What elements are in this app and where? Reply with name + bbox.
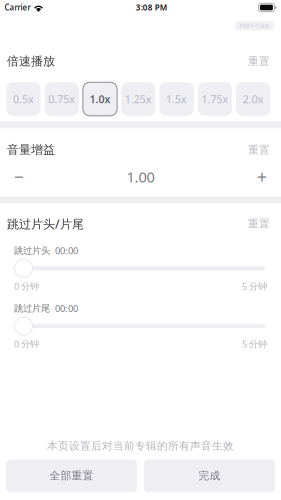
staticText: 1.25x [125, 92, 152, 106]
staticText: 完成 [198, 469, 220, 482]
button[interactable]: 1.75x [198, 82, 232, 116]
staticText: 3:08 PM [136, 2, 167, 13]
button[interactable]: 重置 [234, 53, 270, 70]
button[interactable]: 1.25x [121, 82, 155, 116]
staticText: 倍速播放 [7, 54, 55, 68]
staticText: 本页设置后对当前专辑的所有声音生效 [47, 439, 234, 452]
staticText: + [257, 165, 267, 188]
staticText: 5 分钟 [242, 338, 267, 350]
staticText: 00:00 [55, 244, 78, 257]
staticText: 音量增益 [7, 142, 55, 157]
button[interactable]: 完成 [144, 459, 275, 492]
staticText: 1.00 [126, 167, 154, 186]
staticText: 00:00 [55, 302, 78, 315]
button[interactable]: 1.5x [159, 82, 194, 116]
button[interactable]: 0.5x [6, 82, 40, 116]
button[interactable]: 重置 [234, 215, 270, 232]
staticText: 2.0x [243, 92, 264, 106]
staticText: 1.75x [201, 92, 228, 106]
staticText: 跳过片头/片尾 [7, 216, 84, 232]
button[interactable]: Increase volume gain [245, 165, 279, 189]
staticText: 跳过片头 [14, 245, 50, 256]
button[interactable]: 0.75x [45, 82, 79, 116]
staticText: 0.75x [48, 92, 75, 106]
staticText: − [14, 165, 24, 188]
button[interactable]: Decrease volume gain [2, 165, 36, 189]
staticText: 1.0x [89, 92, 110, 106]
staticText: 重置 [248, 143, 270, 156]
staticText: 0.5x [13, 92, 34, 106]
staticText: 全部重置 [49, 469, 93, 482]
button[interactable]: 1.0x [83, 82, 117, 116]
staticText: 1.5x [166, 92, 187, 106]
staticText: 跳过片尾 [14, 303, 50, 314]
button[interactable]: 全部重置 [6, 459, 137, 492]
staticText: 0 分钟 [14, 338, 39, 350]
staticText: 扫描 5 个设备 [239, 22, 269, 29]
staticText: 5 分钟 [242, 280, 267, 292]
staticText: 重置 [248, 217, 270, 230]
staticText: Carrier [5, 2, 31, 13]
staticText: 重置 [248, 55, 270, 68]
staticText: 0 分钟 [14, 280, 39, 292]
button[interactable]: 重置 [234, 141, 270, 158]
button[interactable]: 2.0x [236, 82, 270, 116]
